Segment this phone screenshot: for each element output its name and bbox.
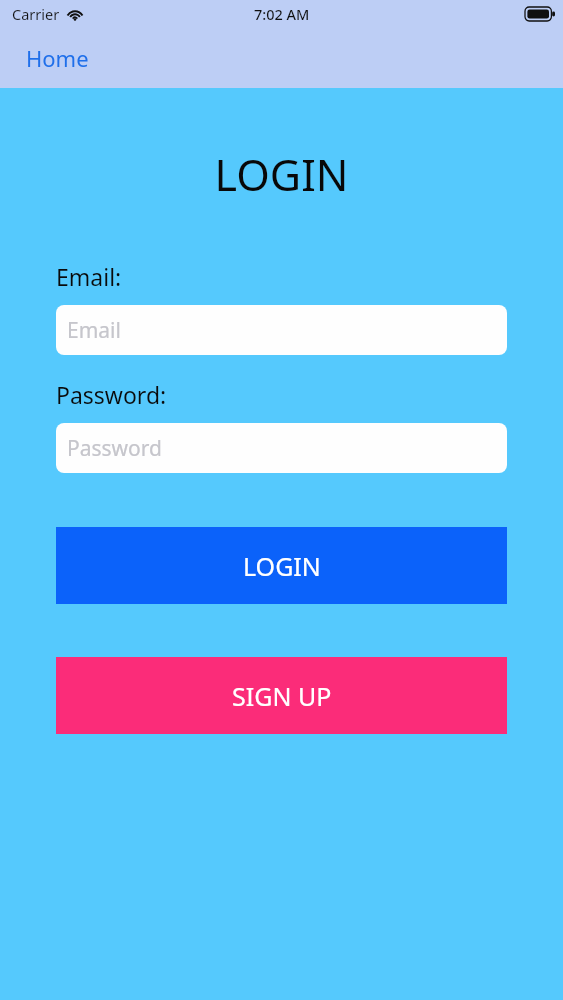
staticText: Email — [67, 316, 121, 345]
button[interactable]: Email — [56, 305, 507, 355]
staticText: SIGN UP — [232, 679, 332, 713]
button[interactable]: SIGN UP — [56, 657, 507, 734]
button[interactable]: Home — [14, 35, 101, 81]
staticText: Email: — [56, 261, 122, 292]
staticText: Password: — [56, 379, 167, 410]
other: Battery full — [525, 7, 555, 21]
other: Wi-Fi signal — [66, 7, 84, 21]
button[interactable]: Password — [56, 423, 507, 473]
staticText: Password — [67, 434, 162, 463]
button[interactable]: LOGIN — [56, 527, 507, 604]
staticText: 7:02 AM — [254, 4, 310, 24]
staticText: Home — [26, 43, 89, 73]
staticText: LOGIN — [243, 549, 321, 583]
staticText: LOGIN — [0, 145, 563, 204]
staticText: Carrier — [12, 4, 60, 24]
